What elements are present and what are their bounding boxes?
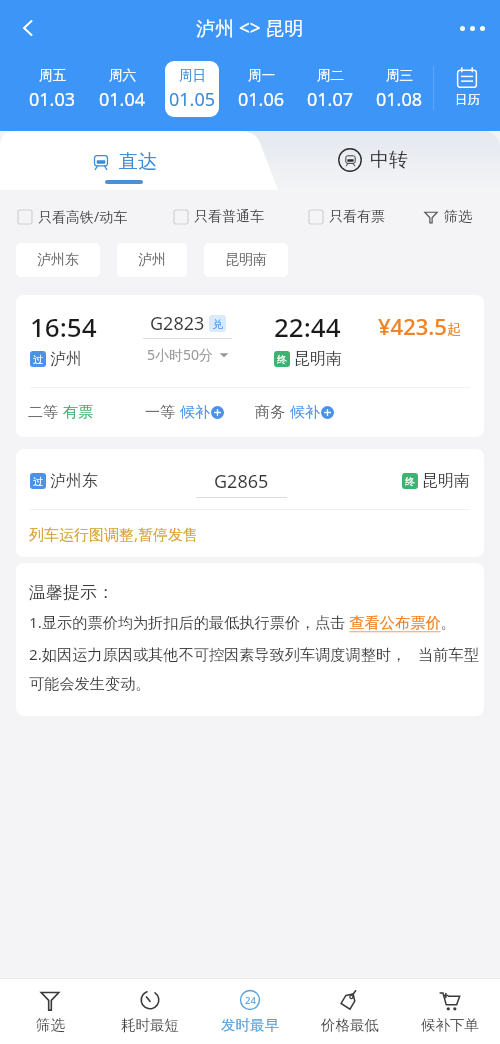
staticText: G2865 bbox=[214, 469, 269, 494]
staticText: 周六 bbox=[109, 67, 136, 84]
staticText: 01.05 bbox=[169, 87, 216, 112]
button[interactable]: 过 bbox=[16, 449, 484, 557]
staticText: 昆明南 bbox=[422, 471, 470, 491]
staticText: 只看普通车 bbox=[194, 208, 264, 226]
staticText: 周二 bbox=[317, 67, 344, 84]
staticText: 泸州 bbox=[138, 251, 166, 269]
staticText: 发时最早 bbox=[221, 1016, 279, 1034]
staticText: 昆明南 bbox=[294, 349, 342, 369]
button[interactable]: 筛选 bbox=[0, 979, 100, 1044]
staticText: 周五 bbox=[39, 67, 66, 84]
staticText: 只看高铁/动车 bbox=[38, 207, 128, 226]
staticText: 01.03 bbox=[29, 87, 76, 112]
staticText: 商务 bbox=[255, 403, 285, 422]
staticText: 24 bbox=[245, 994, 256, 1007]
button[interactable]: 耗时最短 bbox=[100, 979, 200, 1044]
button[interactable]: 周二 bbox=[295, 56, 364, 131]
staticText: 筛选 bbox=[36, 1016, 65, 1034]
staticText: 周三 bbox=[386, 67, 413, 84]
button[interactable]: 只看有票 bbox=[309, 208, 385, 226]
staticText: 耗时最短 bbox=[121, 1016, 179, 1034]
staticText: 筛选 bbox=[444, 208, 472, 226]
staticText: 01.04 bbox=[99, 87, 146, 112]
button[interactable]: 周六 bbox=[87, 56, 157, 131]
staticText: 昆明南 bbox=[225, 251, 267, 269]
staticText: 日历 bbox=[455, 92, 480, 108]
staticText: 泸州东 bbox=[50, 471, 98, 491]
staticText: 二等 bbox=[28, 403, 58, 422]
staticText: 过 bbox=[33, 475, 43, 488]
staticText: G2823 bbox=[150, 311, 205, 336]
staticText: 终 bbox=[277, 353, 287, 366]
button[interactable]: 直达 bbox=[0, 131, 278, 190]
staticText: 只看有票 bbox=[329, 208, 385, 226]
staticText: 列车运行图调整,暂停发售 bbox=[29, 524, 199, 544]
staticText: 候补 bbox=[290, 403, 320, 422]
staticText: 周日 bbox=[179, 67, 206, 84]
staticText: 终 bbox=[405, 475, 415, 488]
staticText: 22:44 bbox=[274, 309, 341, 344]
staticText: ¥423.5 bbox=[378, 311, 447, 341]
button[interactable]: 周五 bbox=[17, 56, 87, 131]
button[interactable]: 日历 bbox=[433, 56, 500, 131]
staticText: 一等 bbox=[145, 403, 175, 422]
staticText: 泸州 <> 昆明 bbox=[196, 15, 304, 41]
staticText: 有票 bbox=[63, 403, 93, 422]
button[interactable]: 周日 bbox=[157, 56, 226, 131]
button[interactable]: 只看高铁/动车 bbox=[18, 207, 128, 226]
staticText: 泸州 bbox=[50, 349, 82, 369]
button[interactable]: 只看普通车 bbox=[174, 208, 264, 226]
button[interactable]: 周三 bbox=[364, 56, 433, 131]
staticText: 温馨提示： bbox=[29, 582, 114, 603]
button[interactable]: 泸州 bbox=[117, 243, 187, 277]
button[interactable]: 昆明南 bbox=[204, 243, 288, 277]
button[interactable]: 24 bbox=[200, 979, 300, 1044]
staticText: 1.显示的票价均为折扣后的最低执行票价，点击 查看公布票价。 2.如因运力原因或… bbox=[29, 612, 479, 694]
staticText: 泸州东 bbox=[37, 251, 79, 269]
button[interactable]: 中转 bbox=[338, 148, 408, 172]
staticText: 01.08 bbox=[376, 87, 423, 112]
staticText: 起 bbox=[447, 321, 461, 339]
button[interactable]: 泸州东 bbox=[16, 243, 100, 277]
staticText: 周一 bbox=[248, 67, 275, 84]
staticText: 过 bbox=[33, 353, 43, 366]
staticText: 5小时50分 bbox=[147, 345, 214, 364]
button[interactable]: 周一 bbox=[226, 56, 295, 131]
staticText: 中转 bbox=[370, 148, 408, 172]
staticText: 01.06 bbox=[238, 87, 285, 112]
button[interactable]: 筛选 bbox=[420, 204, 476, 230]
button[interactable]: 候补下单 bbox=[400, 979, 500, 1044]
staticText: 兑 bbox=[212, 317, 223, 331]
staticText: 候补 bbox=[180, 403, 210, 422]
button[interactable]: Back bbox=[6, 6, 50, 50]
staticText: 01.07 bbox=[307, 87, 354, 112]
staticText: 直达 bbox=[119, 150, 157, 174]
staticText: 16:54 bbox=[30, 309, 97, 344]
staticText: 候补下单 bbox=[421, 1016, 479, 1034]
button[interactable]: 价格最低 bbox=[300, 979, 400, 1044]
button[interactable]: More options bbox=[450, 6, 494, 50]
button[interactable]: 16:54 bbox=[16, 295, 484, 437]
staticText: 价格最低 bbox=[321, 1016, 379, 1034]
